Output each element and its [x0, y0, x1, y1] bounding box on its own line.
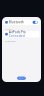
staticText: AirPods Pro: [9, 30, 26, 34]
button[interactable]: Done: [17, 77, 26, 80]
staticText: OTHER DEVICES: [5, 41, 16, 42]
staticText: Connected: [9, 34, 25, 38]
button[interactable]: Bluetooth: [4, 20, 39, 25]
staticText: MY DEVICES: [5, 28, 13, 30]
staticText: Done: [17, 76, 25, 80]
staticText: Bluetooth: [9, 20, 24, 24]
button[interactable]: AirPods Pro: [4, 31, 39, 37]
